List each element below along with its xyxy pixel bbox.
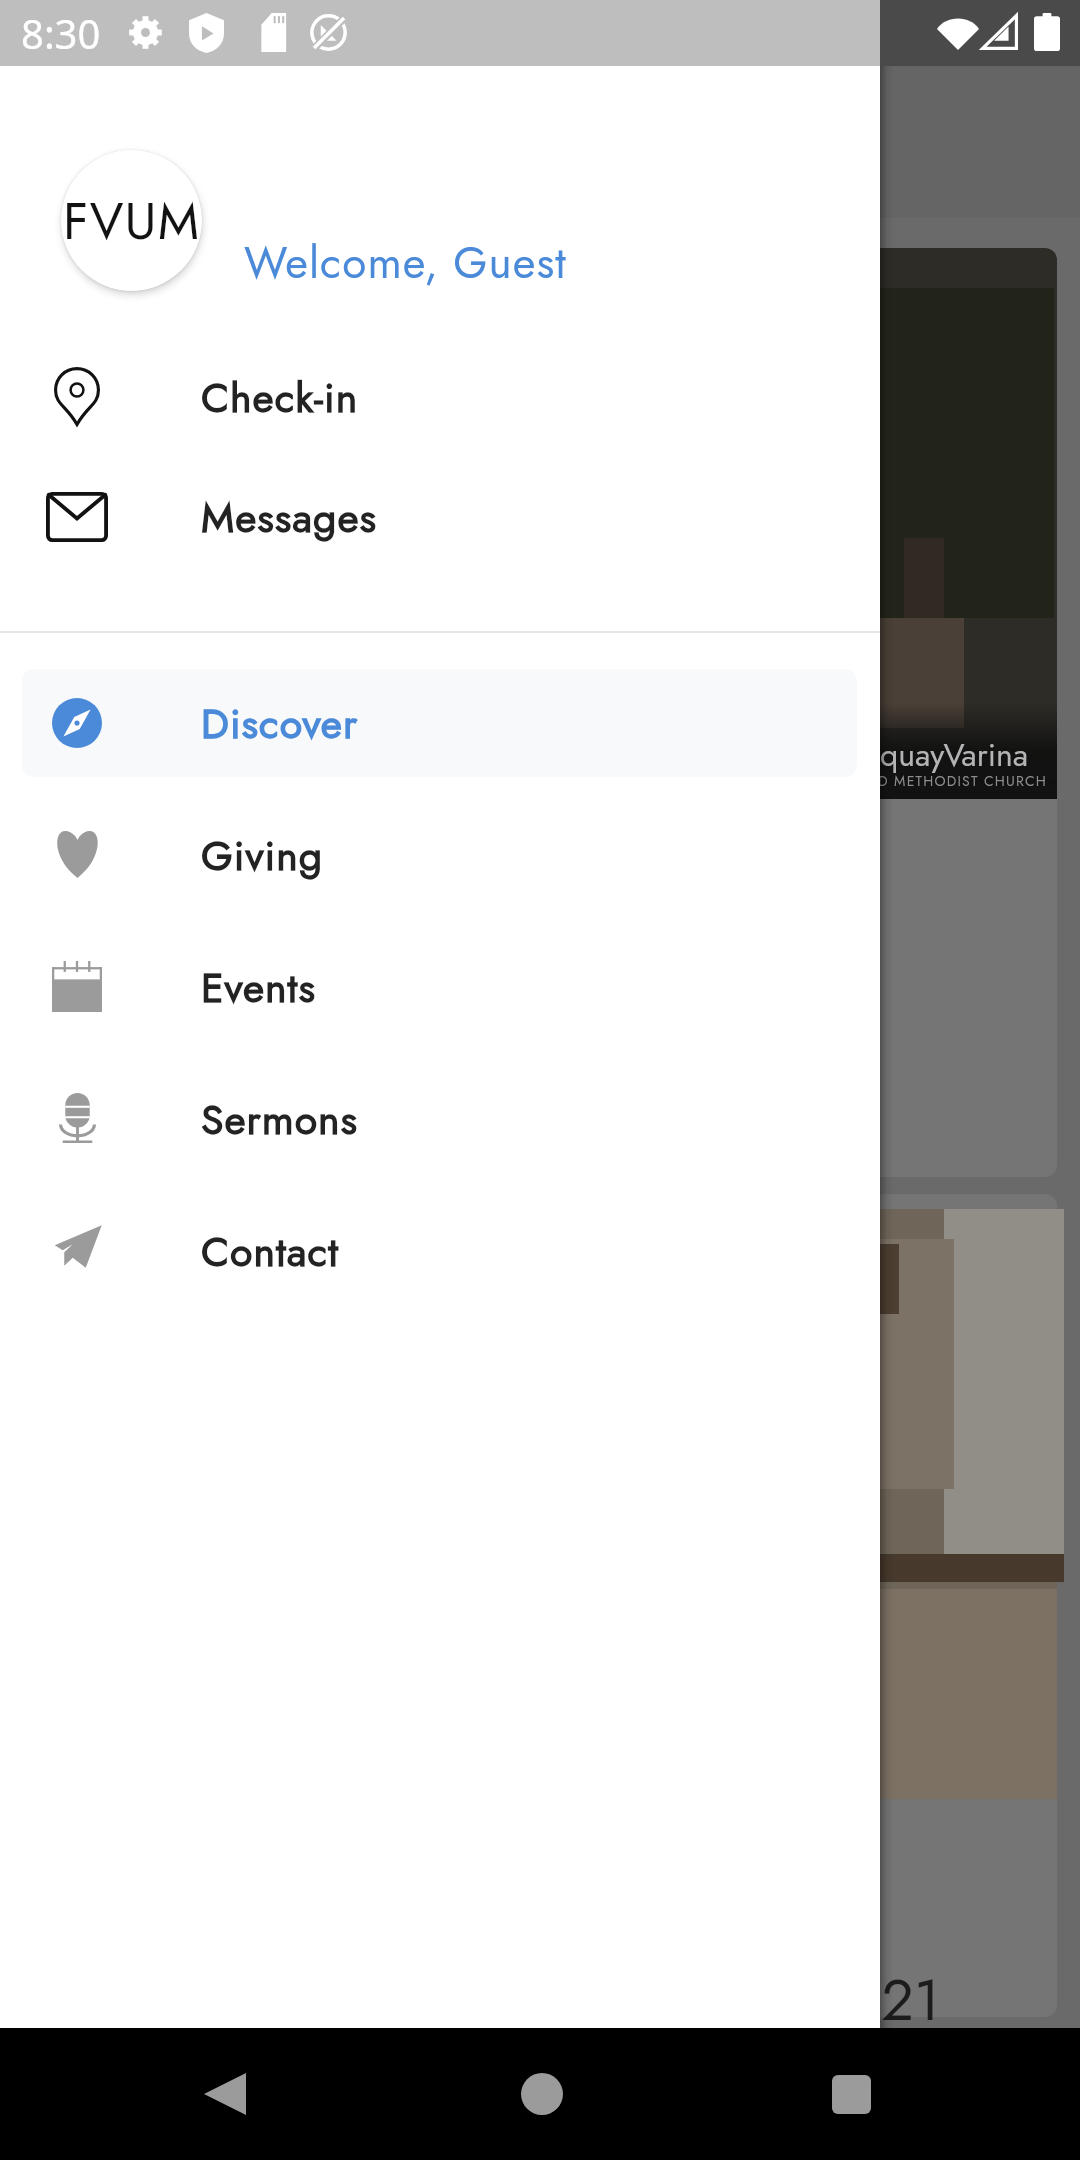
staticText: Messages <box>201 488 378 547</box>
staticText: Welcome, Guest <box>244 231 567 295</box>
staticText: 8:30 <box>21 6 101 60</box>
staticText: quayVarina <box>880 732 1029 778</box>
button[interactable]: Events <box>22 933 857 1041</box>
button[interactable]: Contact <box>22 1197 857 1305</box>
button[interactable]: Back <box>189 2058 261 2130</box>
staticText: Giving <box>201 826 324 885</box>
staticText: D METHODIST CHURCH <box>878 771 1048 791</box>
button[interactable]: Recents <box>815 2058 887 2130</box>
staticText: Discover <box>201 694 359 753</box>
staticText: Check-in <box>201 368 359 427</box>
button[interactable]: Home <box>506 2058 578 2130</box>
staticText: 21 <box>881 1958 941 2042</box>
button[interactable]: Profile <box>61 150 202 291</box>
staticText: Sermons <box>201 1090 359 1149</box>
staticText: FVUM <box>63 184 201 258</box>
button[interactable]: Discover <box>22 669 857 777</box>
button[interactable]: Giving <box>22 801 857 909</box>
button[interactable]: Messages <box>22 463 857 571</box>
button[interactable]: Sermons <box>22 1065 857 1173</box>
staticText: Events <box>201 958 316 1017</box>
button[interactable]: Check-in <box>22 343 857 451</box>
staticText: Contact <box>201 1222 339 1281</box>
